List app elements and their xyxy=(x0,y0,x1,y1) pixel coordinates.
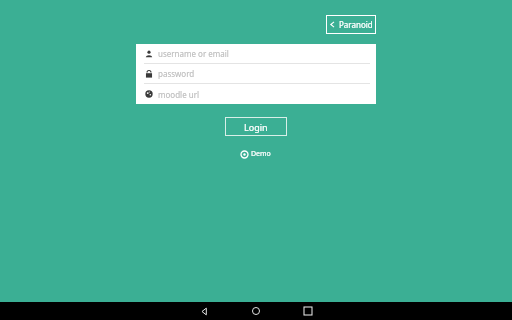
button[interactable]: Paranoid xyxy=(326,15,376,34)
staticText: moodle url xyxy=(158,89,200,100)
button[interactable]: Login xyxy=(225,117,287,136)
staticText: Login xyxy=(244,121,268,133)
staticText: password xyxy=(158,68,195,79)
button[interactable]: Demo xyxy=(239,147,273,161)
button[interactable]: Recent apps xyxy=(282,302,334,320)
button[interactable]: moodle url xyxy=(136,84,376,104)
button[interactable]: Back xyxy=(178,302,230,320)
button[interactable]: password xyxy=(136,64,376,83)
button[interactable]: Home xyxy=(230,302,282,320)
staticText: Demo xyxy=(251,149,271,159)
staticText: Paranoid xyxy=(339,19,373,30)
button[interactable]: username or email xyxy=(136,44,376,63)
staticText: username or email xyxy=(158,48,229,59)
